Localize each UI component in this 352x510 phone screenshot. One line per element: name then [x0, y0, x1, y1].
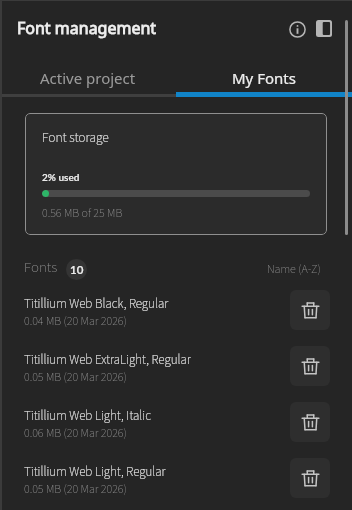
- button[interactable]: Titillium Web Black, Regular: [0, 282, 352, 338]
- staticText: Titillium Web Light, Regular: [24, 463, 166, 482]
- staticText: 10: [70, 263, 84, 277]
- button[interactable]: Active project: [0, 55, 176, 101]
- button[interactable]: Delete font: [290, 290, 330, 330]
- staticText: Active project: [40, 68, 136, 88]
- staticText: Name (A-Z): [267, 261, 321, 278]
- staticText: 0.06 MB (20 Mar 2026): [24, 425, 127, 442]
- button[interactable]: My Fonts: [176, 55, 352, 101]
- staticText: Fonts: [24, 257, 58, 278]
- button[interactable]: Titillium Web Light, Italic: [0, 394, 352, 450]
- staticText: Titillium Web Light, Italic: [24, 407, 152, 426]
- staticText: 0.05 MB (20 Mar 2026): [24, 481, 127, 498]
- button[interactable]: Titillium Web ExtraLight, Regular: [0, 338, 352, 394]
- staticText: 0.05 MB (20 Mar 2026): [24, 369, 127, 386]
- button[interactable]: Delete font: [290, 346, 330, 386]
- button[interactable]: Delete font: [290, 458, 330, 498]
- button[interactable]: Info: [285, 17, 309, 41]
- staticText: 0.04 MB (20 Mar 2026): [24, 313, 127, 330]
- staticText: Titillium Web Black, Regular: [24, 295, 169, 314]
- staticText: Font management: [17, 17, 157, 39]
- button[interactable]: Delete font: [290, 402, 330, 442]
- staticText: Font storage: [42, 128, 109, 147]
- staticText: My Fonts: [232, 68, 296, 88]
- staticText: Titillium Web ExtraLight, Regular: [24, 351, 191, 370]
- button[interactable]: Titillium Web Light, Regular: [0, 450, 352, 506]
- staticText: 2% used: [42, 171, 80, 183]
- staticText: 0.56 MB of 25 MB: [42, 205, 123, 222]
- button[interactable]: Toggle side panel: [312, 16, 336, 40]
